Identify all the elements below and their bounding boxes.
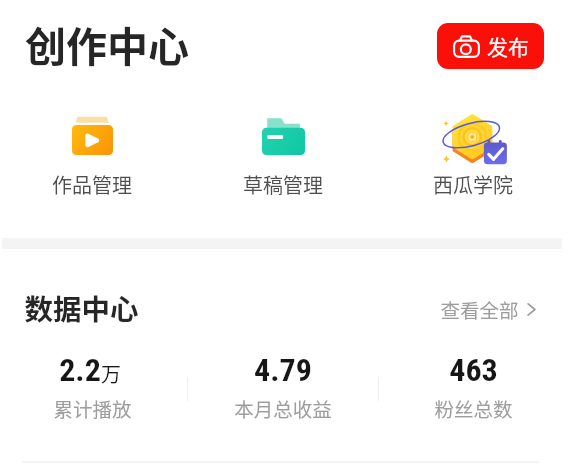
staticText: 4.79 bbox=[254, 351, 312, 389]
button[interactable]: 463 bbox=[378, 351, 568, 421]
staticText: 发布 bbox=[487, 31, 529, 61]
staticText: 粉丝总数 bbox=[434, 394, 513, 422]
staticText: 2.2 bbox=[59, 351, 101, 389]
staticText: 作品管理 bbox=[52, 170, 132, 199]
button[interactable]: 发布 bbox=[437, 23, 544, 69]
button[interactable]: 草稿管理 bbox=[188, 104, 378, 199]
staticText: 创作中心 bbox=[25, 14, 189, 73]
button[interactable]: 查看全部 bbox=[430, 286, 546, 332]
staticText: 西瓜学院 bbox=[433, 170, 513, 199]
staticText: 累计播放 bbox=[53, 394, 132, 422]
staticText: 草稿管理 bbox=[243, 170, 323, 199]
button[interactable]: 作品管理 bbox=[0, 104, 187, 199]
button[interactable]: 2.2 bbox=[0, 351, 187, 421]
staticText: 463 bbox=[449, 351, 498, 389]
staticText: 本月总收益 bbox=[234, 394, 332, 422]
staticText: 万 bbox=[101, 359, 121, 388]
button[interactable]: 西瓜学院 bbox=[378, 104, 568, 199]
staticText: 查看全部 bbox=[440, 295, 519, 323]
staticText: 数据中心 bbox=[24, 287, 139, 328]
button[interactable]: 4.79 bbox=[188, 351, 378, 421]
